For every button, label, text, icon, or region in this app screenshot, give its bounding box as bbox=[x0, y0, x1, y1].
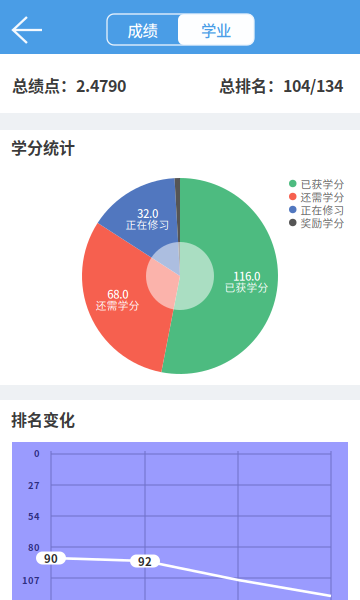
staticText: 正在修习 bbox=[125, 216, 169, 232]
staticText: 54 bbox=[28, 509, 40, 523]
staticText: 107 bbox=[22, 573, 40, 587]
staticText: 奖励学分 bbox=[300, 215, 344, 230]
staticText: 总绩点：2.4790 bbox=[12, 73, 126, 97]
staticText: 排名变化 bbox=[11, 407, 75, 431]
staticText: 已获学分 bbox=[300, 176, 344, 191]
staticText: 90 bbox=[44, 550, 58, 566]
button[interactable]: 成绩 bbox=[107, 14, 178, 45]
staticText: 学分统计 bbox=[11, 135, 75, 159]
staticText: 总排名：104/134 bbox=[219, 73, 343, 97]
staticText: 80 bbox=[28, 540, 40, 554]
staticText: 116.0 bbox=[233, 268, 260, 284]
staticText: 学业 bbox=[201, 18, 231, 41]
staticText: 还需学分 bbox=[96, 297, 140, 312]
staticText: 27 bbox=[28, 478, 40, 492]
staticText: 68.0 bbox=[107, 286, 128, 302]
staticText: 92 bbox=[138, 553, 152, 569]
staticText: 已获学分 bbox=[224, 279, 268, 294]
staticText: 0 bbox=[34, 446, 40, 460]
button[interactable]: 学业 bbox=[178, 14, 254, 45]
staticText: 还需学分 bbox=[300, 189, 344, 204]
staticText: 正在修习 bbox=[300, 202, 344, 217]
button[interactable]: Back bbox=[3, 7, 52, 53]
staticText: 成绩 bbox=[127, 18, 157, 41]
staticText: 32.0 bbox=[137, 205, 158, 221]
